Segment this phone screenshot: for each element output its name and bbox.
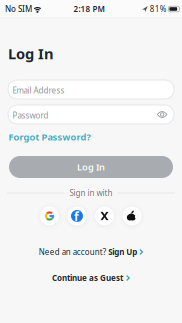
staticText: f	[74, 209, 79, 225]
button[interactable]: Password	[8, 105, 174, 124]
button[interactable]: Forgot Password?	[8, 131, 90, 143]
staticText: Log In	[8, 44, 54, 63]
staticText: Forgot Password?	[8, 131, 90, 143]
button[interactable]: Continue as Guest	[52, 273, 130, 283]
button[interactable]: Sign in with X	[95, 206, 114, 225]
staticText: 81%	[150, 4, 167, 14]
button[interactable]: Sign in with Apple	[122, 206, 141, 225]
staticText: No SIM	[5, 4, 32, 14]
staticText: Sign in with	[69, 188, 112, 198]
button[interactable]: Sign in with Facebook	[67, 206, 86, 225]
staticText: Continue as Guest	[52, 273, 123, 283]
button[interactable]: Sign in with Google	[40, 206, 59, 225]
button[interactable]: Sign Up	[108, 247, 143, 257]
button[interactable]: Show password	[157, 110, 167, 118]
button[interactable]: Email Address	[8, 80, 174, 99]
staticText: Password	[12, 110, 48, 121]
staticText: Sign Up	[108, 247, 137, 257]
staticText: Log In	[77, 161, 105, 173]
staticText: 2:18 PM	[73, 4, 104, 14]
button[interactable]: Log In	[9, 156, 173, 178]
staticText: Need an account?	[39, 247, 106, 257]
staticText: Email Address	[12, 85, 64, 96]
